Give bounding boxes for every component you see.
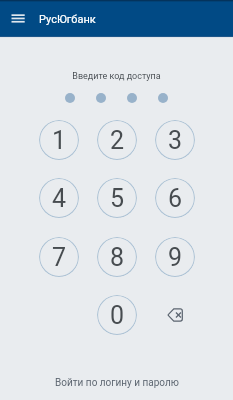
button[interactable]: Backspace (155, 295, 195, 335)
button[interactable]: 5 (97, 178, 137, 218)
button[interactable]: 7 (39, 237, 79, 277)
staticText: 5 (110, 184, 125, 213)
staticText: 8 (110, 243, 125, 272)
button[interactable]: 9 (155, 237, 195, 277)
button[interactable]: 1 (39, 120, 79, 160)
button[interactable]: 8 (97, 237, 137, 277)
button[interactable]: 4 (39, 178, 79, 218)
staticText: 1 (52, 126, 67, 155)
button[interactable]: 2 (97, 120, 137, 160)
button[interactable]: 3 (155, 120, 195, 160)
staticText: Войти по логину и паролю (55, 377, 179, 389)
staticText: РусЮгбанк (39, 13, 96, 26)
button[interactable]: 0 (97, 295, 137, 335)
button[interactable]: Open navigation menu (6, 6, 30, 30)
staticText: 0 (110, 301, 125, 330)
staticText: Введите код доступа (0, 71, 233, 82)
staticText: 9 (168, 243, 183, 272)
button[interactable]: Войти по логину и паролю (0, 365, 233, 400)
staticText: 4 (52, 184, 67, 213)
button[interactable]: 6 (155, 178, 195, 218)
staticText: 6 (168, 184, 183, 213)
staticText: 2 (110, 126, 125, 155)
staticText: 3 (168, 126, 183, 155)
staticText: 7 (52, 243, 67, 272)
